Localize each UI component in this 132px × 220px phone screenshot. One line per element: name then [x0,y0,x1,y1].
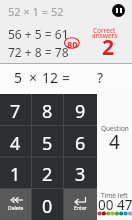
button[interactable]: Delete [0,189,31,220]
staticText: 8 [42,99,53,124]
staticText: 9 [75,99,86,124]
button[interactable]: 4 [0,126,31,158]
staticText: Enter [74,205,87,212]
button[interactable]: 3 [64,157,97,189]
staticText: 3 [75,162,86,187]
staticText: Time left [101,191,128,200]
staticText: 52 × 1 = 52 [8,4,64,19]
staticText: 7 [10,99,21,124]
button[interactable]: 5 [32,126,63,158]
button[interactable]: 9 [64,94,97,126]
button[interactable]: 1 [0,157,31,189]
button[interactable] [112,4,125,17]
staticText: Delete [8,205,24,212]
staticText: × [29,68,38,87]
staticText: 72 + 8 = 78 [8,44,69,60]
staticText: 00 47 [98,196,132,214]
staticText: = [62,68,71,87]
button[interactable]: 7 [0,94,31,126]
staticText: 80 [67,38,78,50]
staticText: 5 [14,68,23,87]
staticText: 1 [10,162,21,187]
button[interactable]: 6 [64,126,97,158]
staticText: 12 [42,68,59,87]
staticText: Correct [93,26,116,35]
staticText: 56 + 5 = 61 [8,26,69,42]
staticText: answers [92,31,118,40]
staticText: 4 [10,131,21,156]
button[interactable]: 2 [32,157,63,189]
staticText: ? [97,68,104,87]
staticText: Question [101,124,129,133]
staticText: 6 [75,131,86,156]
staticText: 2 [42,162,53,187]
staticText: 5 [42,131,53,156]
button[interactable]: Enter [64,189,97,220]
staticText: 0 [42,194,53,219]
staticText: 4 [109,129,120,153]
staticText: 2 [102,33,115,62]
button[interactable]: 0 [32,189,63,220]
button[interactable]: 8 [32,94,63,126]
